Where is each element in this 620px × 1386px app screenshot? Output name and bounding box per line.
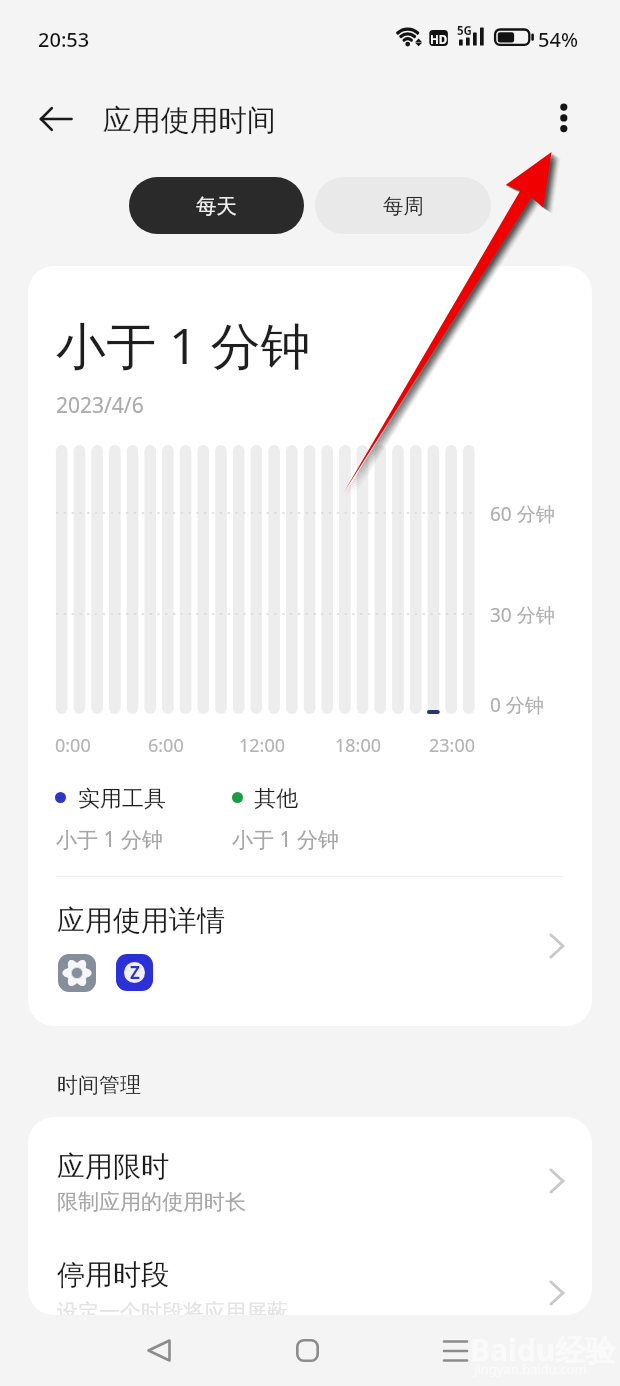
staticText: 6:00 <box>148 733 184 758</box>
staticText: 小于 1 分钟 <box>56 825 163 854</box>
button[interactable]: 停用时段 <box>28 1225 592 1315</box>
staticText: 设定一个时段将应用屏蔽 <box>57 1299 288 1315</box>
button[interactable]: Home <box>251 1315 363 1386</box>
staticText: 其他 <box>254 785 298 813</box>
button[interactable]: 应用限时 <box>28 1117 592 1229</box>
staticText: 小于 1 分钟 <box>56 311 311 379</box>
button[interactable]: More options <box>542 92 586 145</box>
staticText: 停用时段 <box>57 1257 169 1292</box>
button[interactable]: Back <box>26 88 88 150</box>
staticText: 2023/4/6 <box>56 391 144 420</box>
staticText: 小于 1 分钟 <box>232 825 339 854</box>
staticText: 应用使用详情 <box>57 903 225 938</box>
staticText: 应用使用时间 <box>103 102 276 138</box>
button[interactable]: 每天 <box>129 177 304 234</box>
staticText: HD <box>430 32 448 48</box>
staticText: 18:00 <box>335 733 382 758</box>
staticText: 12:00 <box>239 733 286 758</box>
staticText: 60 分钟 <box>490 501 555 527</box>
button[interactable]: 每周 <box>315 177 491 234</box>
staticText: 30 分钟 <box>490 602 555 628</box>
staticText: 限制应用的使用时长 <box>57 1189 246 1215</box>
staticText: 20:53 <box>38 26 90 53</box>
staticText: 23:00 <box>429 733 476 758</box>
staticText: 实用工具 <box>78 785 166 813</box>
staticText: 54% <box>538 26 578 53</box>
staticText: 0 分钟 <box>490 692 544 718</box>
staticText: 应用限时 <box>57 1149 169 1184</box>
button[interactable]: 应用使用详情 <box>28 877 592 1026</box>
staticText: 时间管理 <box>57 1072 141 1098</box>
button[interactable]: Back <box>103 1315 215 1386</box>
staticText: 每周 <box>383 193 424 219</box>
button[interactable]: Recents <box>399 1315 511 1386</box>
staticText: Z <box>130 962 140 982</box>
staticText: 0:00 <box>55 733 91 758</box>
staticText: 5G <box>457 23 472 39</box>
staticText: 每天 <box>196 193 237 219</box>
